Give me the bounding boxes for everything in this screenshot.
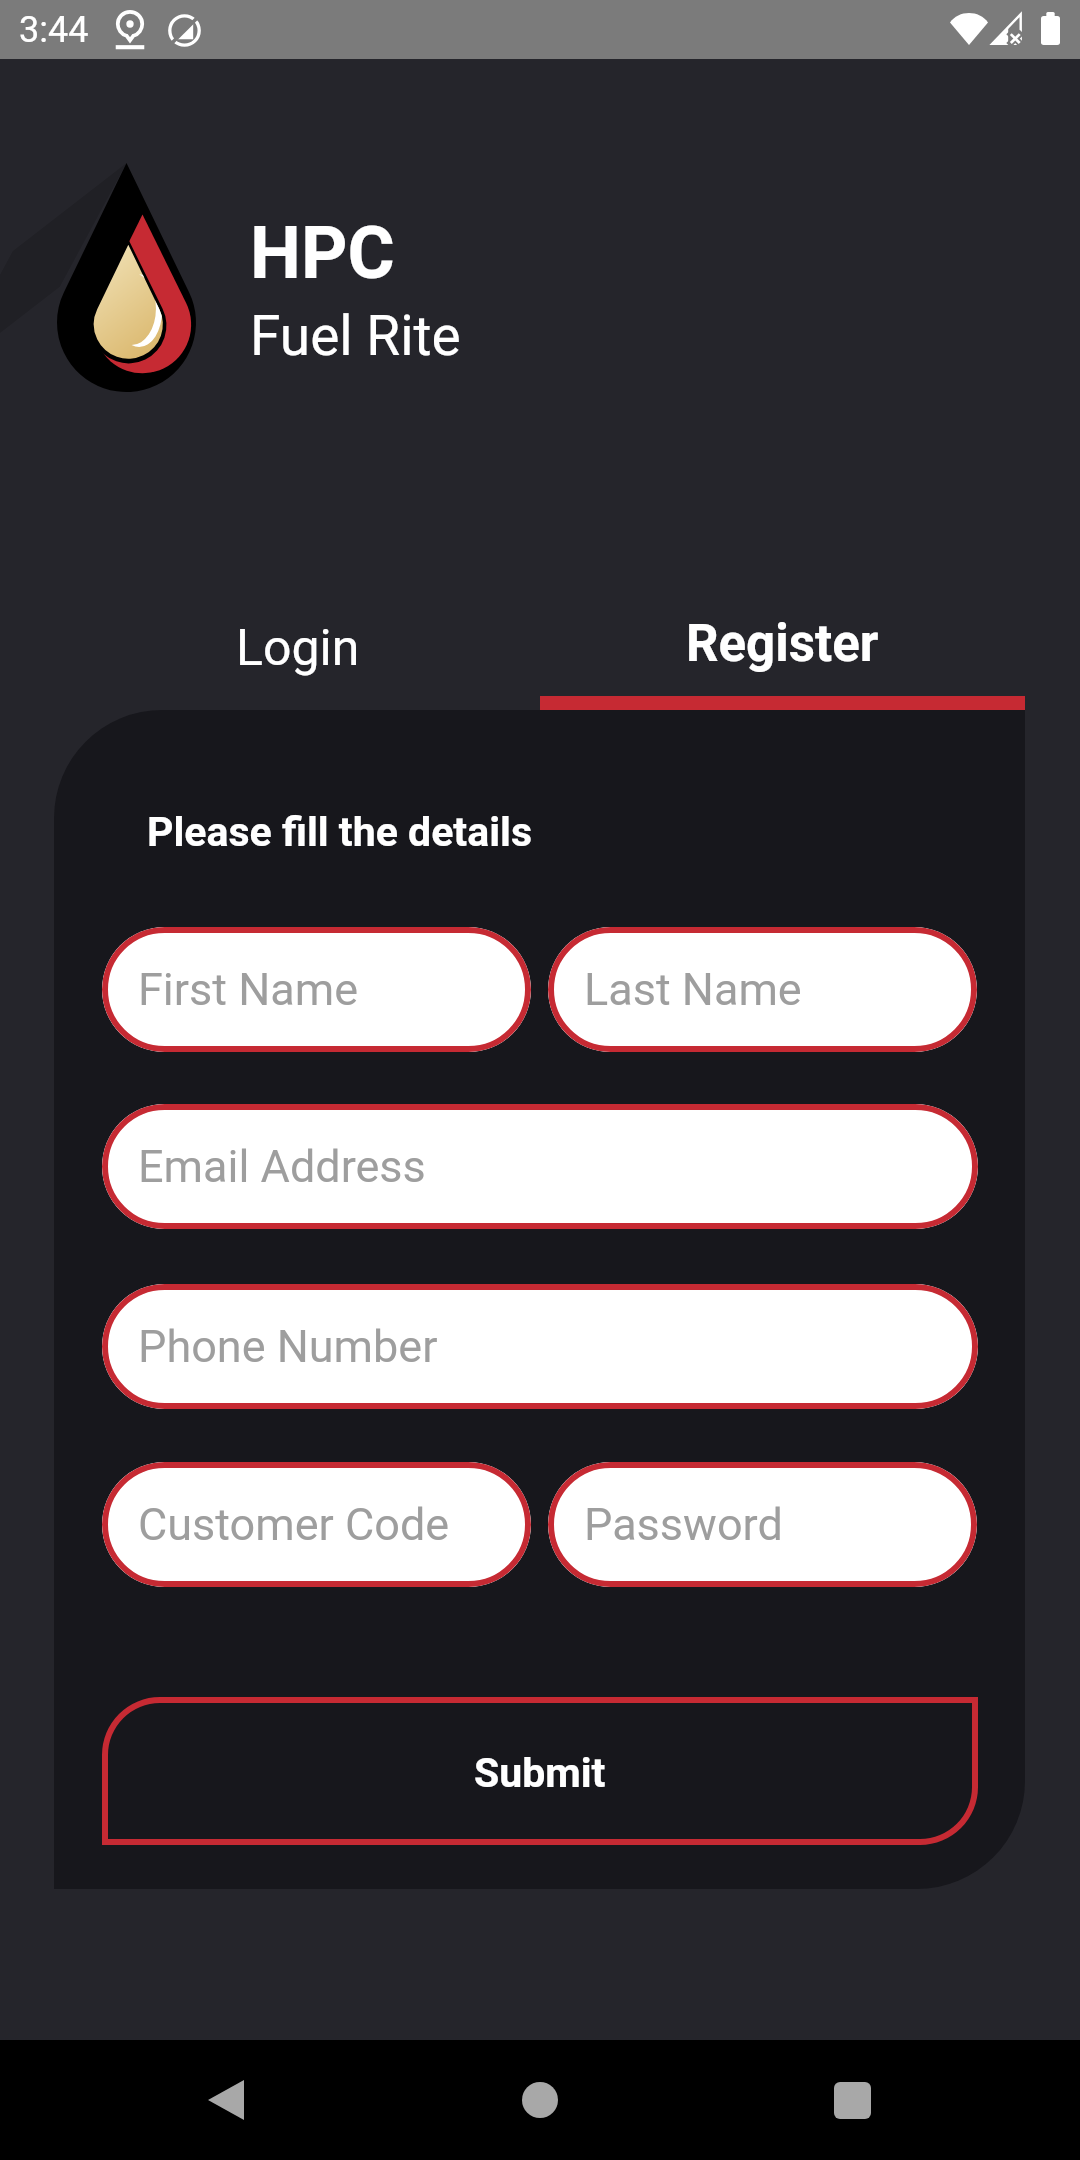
staticText: Login [236, 619, 360, 678]
button[interactable]: Register [540, 596, 1025, 692]
staticText: Password [584, 1498, 783, 1551]
staticText: 3:44 [19, 9, 89, 51]
button[interactable]: Last Name [548, 927, 977, 1052]
staticText: Fuel Rite [250, 304, 461, 368]
staticText: Last Name [584, 963, 802, 1016]
staticText: Please fill the details [147, 808, 532, 856]
button[interactable]: Phone Number [102, 1284, 978, 1409]
staticText: HPC [250, 211, 395, 295]
button[interactable]: Customer Code [102, 1462, 531, 1587]
button[interactable]: Email Address [102, 1104, 978, 1229]
button[interactable]: Password [548, 1462, 977, 1587]
button[interactable]: Submit [102, 1697, 978, 1845]
staticText: Submit [474, 1749, 606, 1797]
staticText: Customer Code [138, 1498, 450, 1551]
staticText: Phone Number [138, 1320, 438, 1373]
staticText: Email Address [138, 1140, 426, 1193]
staticText: Register [686, 614, 879, 674]
button[interactable]: Back [166, 2060, 286, 2140]
button[interactable]: Login [55, 600, 540, 696]
staticText: First Name [138, 963, 359, 1016]
button[interactable]: Home [480, 2060, 600, 2140]
button[interactable]: Recents [792, 2060, 912, 2140]
button[interactable]: First Name [102, 927, 531, 1052]
